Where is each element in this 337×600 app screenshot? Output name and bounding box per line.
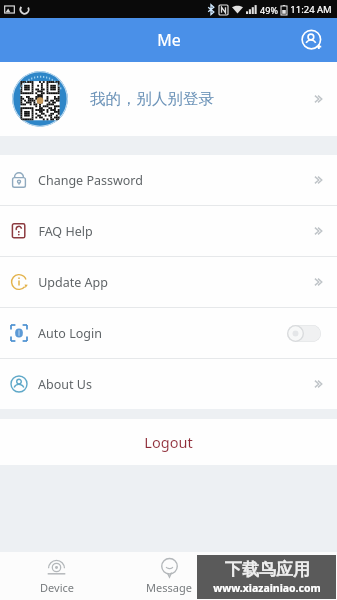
staticText: 下载鸟应用 — [225, 559, 310, 580]
staticText: Update App — [38, 274, 108, 291]
button[interactable]: Logout — [0, 419, 337, 465]
staticText: Me — [273, 580, 290, 595]
staticText: Auto Login — [38, 325, 102, 342]
button[interactable]: Me — [225, 552, 337, 600]
staticText: www.xiazainiao.com — [213, 581, 321, 595]
button[interactable]: About Us — [0, 359, 337, 409]
staticText: Message — [146, 580, 192, 595]
button[interactable]: Add account — [295, 23, 329, 57]
button[interactable]: Message — [113, 552, 225, 600]
button[interactable]: 我的，别人别登录 — [0, 62, 337, 136]
staticText: 49% — [260, 4, 278, 16]
staticText: 11:24 AM — [290, 3, 332, 16]
staticText: Me — [157, 29, 181, 51]
staticText: Device — [40, 580, 74, 595]
button[interactable]: Auto Login toggle — [287, 325, 321, 342]
staticText: About Us — [38, 376, 92, 393]
button[interactable]: Update App — [0, 257, 337, 307]
button[interactable]: Device — [0, 552, 113, 600]
staticText: 我的，别人别登录 — [90, 89, 214, 109]
button[interactable]: Auto Login — [0, 308, 337, 358]
button[interactable]: Change Password — [0, 155, 337, 205]
button[interactable]: FAQ Help — [0, 206, 337, 256]
staticText: Change Password — [38, 172, 143, 189]
staticText: Logout — [144, 432, 193, 452]
staticText: FAQ Help — [38, 223, 93, 240]
